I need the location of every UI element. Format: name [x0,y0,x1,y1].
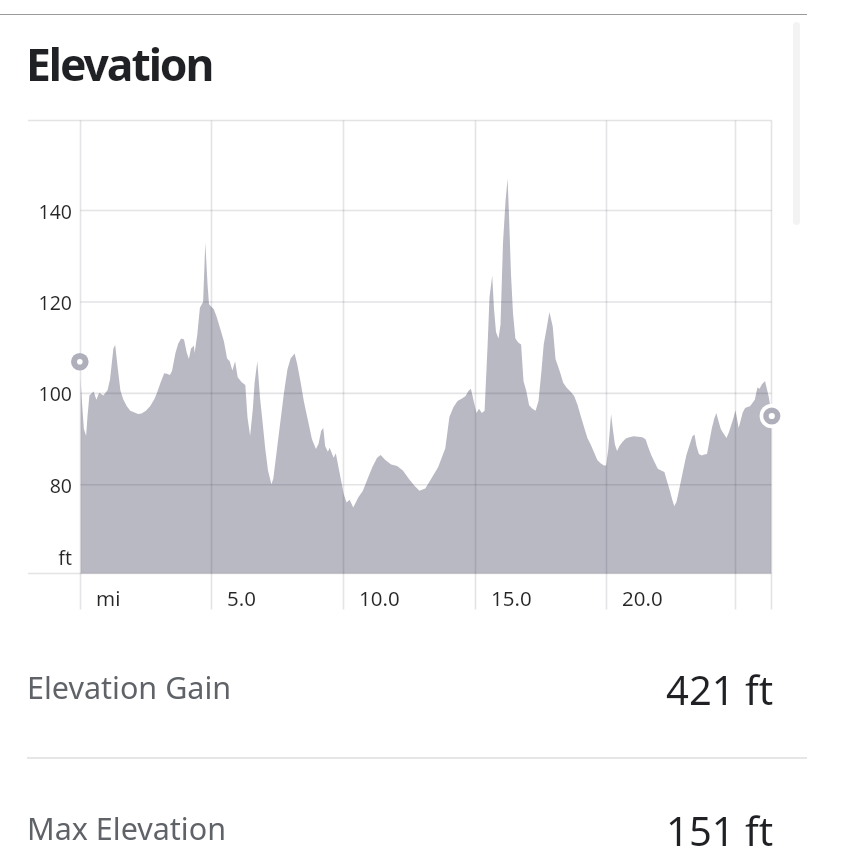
button[interactable]: Start point handle [58,340,102,384]
staticText: 151 ft [666,803,774,857]
staticText: 421 ft [666,662,774,716]
button[interactable]: Elevation Gain [0,616,850,757]
staticText: 15.0 [491,584,532,612]
staticText: 100 [38,380,72,407]
staticText: mi [96,584,121,612]
staticText: 80 [49,472,72,499]
staticText: 140 [38,198,72,225]
staticText: 5.0 [227,584,256,612]
staticText: 20.0 [622,584,663,612]
button[interactable]: Max Elevation [0,757,850,864]
staticText: Max Elevation [27,807,227,849]
button[interactable]: End point handle [750,394,794,438]
staticText: 10.0 [359,584,400,612]
staticText: Elevation [26,33,213,94]
staticText: Elevation Gain [27,666,232,708]
staticText: ft [58,544,72,571]
staticText: 120 [38,289,72,316]
